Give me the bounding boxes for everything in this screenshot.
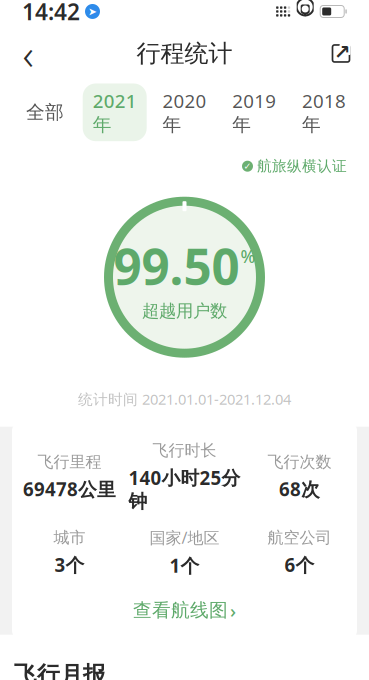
staticText: 航空公司 (267, 528, 331, 547)
staticText: 飞行时长 (152, 441, 216, 460)
staticText: 查看航线图 (133, 599, 228, 622)
staticText: 行程统计 (136, 39, 232, 68)
button[interactable]: 2018年 (289, 83, 359, 141)
staticText: 69478公里 (23, 477, 116, 501)
button[interactable]: 查看航线图 (12, 586, 357, 635)
staticText: 飞行月报 (14, 661, 106, 680)
staticText: 99.50 (113, 233, 239, 298)
button[interactable]: 2020年 (150, 83, 219, 141)
staticText: 2021年 (93, 88, 137, 136)
staticText: ✓ (243, 161, 251, 171)
staticText: › (230, 598, 236, 623)
staticText: % (240, 245, 255, 268)
button[interactable]: 2021年 (80, 83, 150, 141)
button[interactable]: 分享 (319, 31, 363, 75)
staticText: 统计时间 2021.01.01-2021.12.04 (78, 389, 291, 409)
staticText: ➤ (88, 5, 97, 17)
staticText: 全部 (26, 101, 64, 124)
button[interactable]: 全部 (10, 96, 80, 129)
staticText: 14:42 (22, 0, 80, 26)
staticText: 2018年 (302, 88, 346, 136)
button[interactable]: 返回 (6, 31, 50, 75)
staticText: 6个 (284, 552, 314, 577)
button[interactable]: 2019年 (219, 83, 289, 141)
staticText: 航旅纵横认证 (257, 157, 347, 175)
staticText: ↗ (334, 41, 351, 63)
staticText: 1个 (169, 553, 199, 578)
staticText: 2020年 (162, 88, 206, 136)
staticText: 68次 (279, 477, 320, 501)
staticText: 140小时25分钟 (128, 465, 240, 513)
staticText: 3个 (54, 552, 84, 577)
staticText: 飞行里程 (37, 452, 101, 472)
staticText: 城市 (53, 528, 85, 547)
staticText: 飞行次数 (267, 452, 331, 472)
staticText: 国家/地区 (149, 527, 219, 548)
staticText: 超越用户数 (142, 300, 227, 322)
staticText: 2019年 (232, 88, 276, 136)
staticText: ‹ (22, 25, 33, 82)
